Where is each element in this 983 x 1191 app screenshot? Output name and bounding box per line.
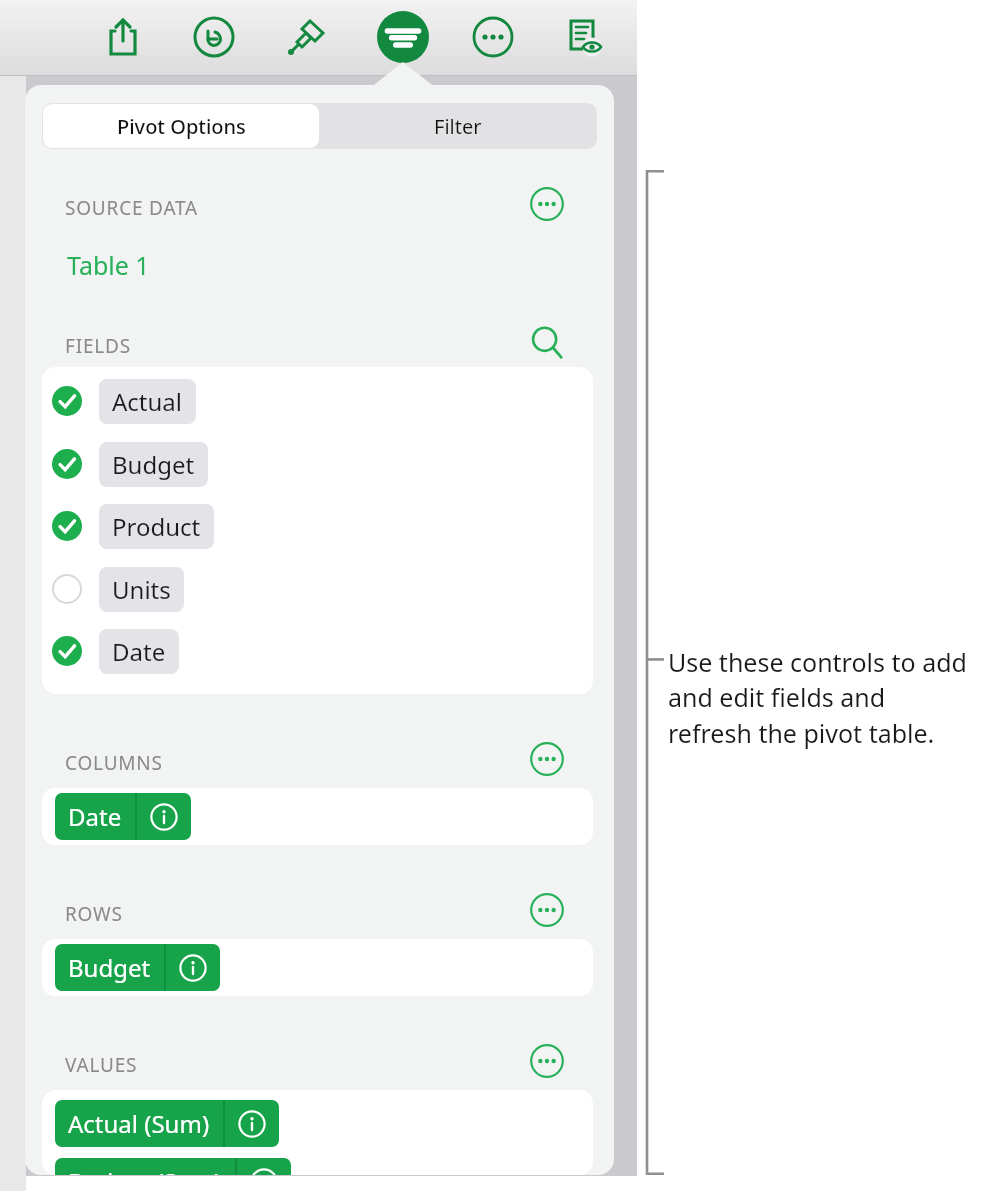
button[interactable]: Pivot Options: [43, 104, 319, 148]
button[interactable]: Date: [52, 626, 593, 676]
button[interactable]: Info: [237, 1158, 291, 1175]
staticText: Budget (Sum): [68, 1165, 222, 1175]
staticText: Budget: [68, 951, 151, 984]
button[interactable]: Info: [166, 944, 220, 991]
button[interactable]: Options: [525, 1039, 569, 1083]
button[interactable]: Undo: [188, 11, 240, 63]
staticText: Budget: [112, 448, 195, 481]
button[interactable]: Budget: [52, 439, 593, 489]
button[interactable]: Format: [280, 11, 332, 63]
button[interactable]: Filter: [320, 104, 596, 148]
button[interactable]: Budget (Sum): [55, 1158, 291, 1175]
button[interactable]: Options: [525, 888, 569, 932]
button[interactable]: Search: [525, 320, 569, 364]
button[interactable]: Share: [97, 11, 149, 63]
staticText: Use these controls to add and edit field…: [668, 645, 968, 751]
button[interactable]: Budget: [55, 944, 220, 991]
staticText: FIELDS: [65, 333, 131, 359]
button[interactable]: Product: [52, 501, 593, 551]
button[interactable]: Table 1: [67, 248, 150, 282]
staticText: Actual: [112, 385, 183, 418]
button[interactable]: Options: [525, 737, 569, 781]
staticText: COLUMNS: [65, 750, 163, 776]
staticText: ROWS: [65, 901, 123, 927]
staticText: VALUES: [65, 1052, 138, 1078]
button[interactable]: Info: [137, 793, 191, 840]
button[interactable]: Options: [525, 182, 569, 226]
button[interactable]: Date: [55, 793, 191, 840]
button[interactable]: Actual (Sum): [55, 1100, 279, 1147]
button[interactable]: Units: [52, 564, 593, 614]
staticText: Date: [112, 635, 166, 668]
button[interactable]: Document: [555, 11, 607, 63]
button[interactable]: More: [467, 11, 519, 63]
staticText: Product: [112, 510, 201, 543]
button[interactable]: Organize: [377, 11, 429, 63]
button[interactable]: Actual: [52, 376, 593, 426]
staticText: Actual (Sum): [68, 1107, 210, 1140]
staticText: Pivot Options: [117, 113, 246, 140]
staticText: SOURCE DATA: [65, 195, 198, 221]
staticText: Filter: [434, 113, 482, 140]
staticText: Date: [68, 800, 122, 833]
staticText: Units: [112, 573, 171, 606]
button[interactable]: Info: [225, 1100, 279, 1147]
